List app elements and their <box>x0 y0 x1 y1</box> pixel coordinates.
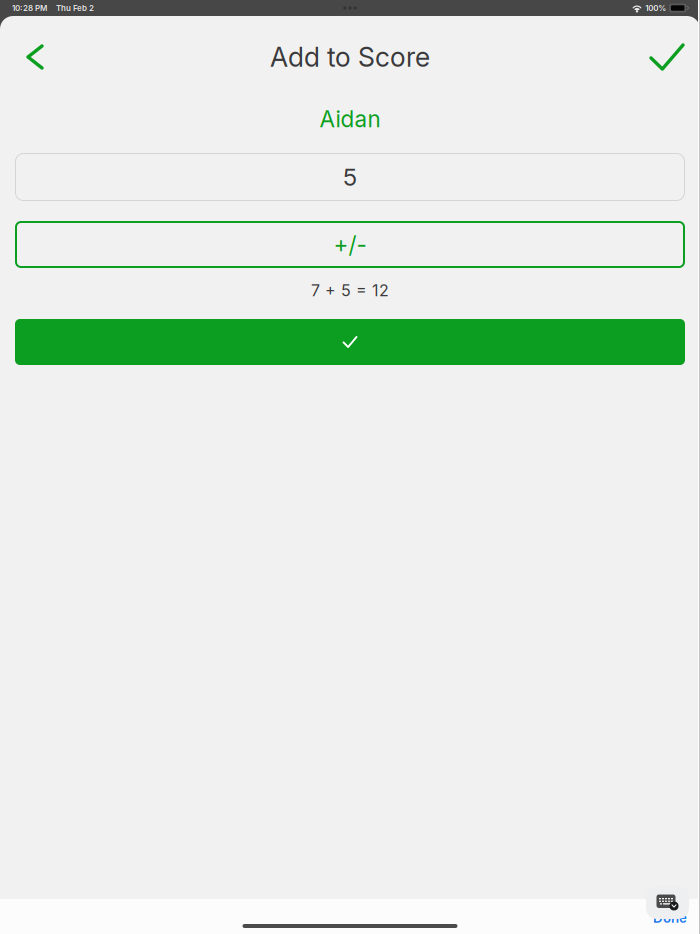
staticText: 100% <box>645 3 666 13</box>
staticText: 10:28 PM <box>12 3 47 13</box>
button[interactable]: Done <box>649 910 691 926</box>
staticText: Done <box>653 910 687 926</box>
staticText: +/- <box>333 231 366 258</box>
staticText: 5 <box>343 162 357 191</box>
staticText: Add to Score <box>270 41 430 73</box>
button[interactable]: Back <box>13 35 57 79</box>
button[interactable]: Add to score <box>15 319 685 365</box>
button[interactable]: +/- <box>15 221 685 268</box>
button[interactable]: Save <box>645 35 689 79</box>
staticText: Thu Feb 2 <box>56 3 94 13</box>
button[interactable]: Dismiss keyboard <box>646 886 689 919</box>
staticText: 7 + 5 = 12 <box>311 281 389 300</box>
staticText: Aidan <box>319 105 380 133</box>
